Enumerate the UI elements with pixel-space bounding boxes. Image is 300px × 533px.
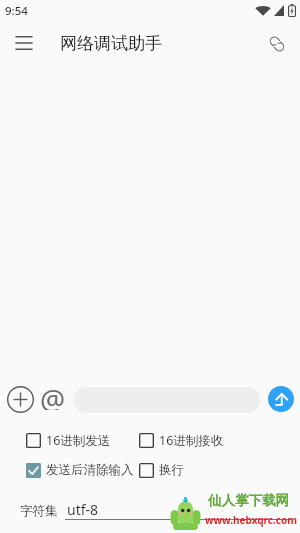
button[interactable]: At sign <box>38 380 68 410</box>
staticText: 9:54 <box>5 3 28 19</box>
button[interactable]: Disconnect <box>262 29 292 59</box>
staticText: www.hebxqrc.com <box>205 513 297 527</box>
staticText: 发送后清除输入 <box>46 462 134 478</box>
button[interactable]: Send <box>268 386 294 412</box>
staticText: 仙人掌下载网 <box>208 492 289 509</box>
staticText: 换行 <box>159 462 184 478</box>
button[interactable]: Add <box>4 383 36 415</box>
staticText: utf-8 <box>67 500 99 519</box>
staticText: @ <box>40 380 66 410</box>
button[interactable]: 16进制发送 <box>26 432 111 449</box>
button[interactable]: 16进制接收 <box>139 432 224 449</box>
button[interactable]: Menu <box>9 28 39 58</box>
staticText: 16进制发送 <box>46 432 111 449</box>
staticText: 16进制接收 <box>159 432 224 449</box>
staticText: 网络调试助手 <box>60 33 162 54</box>
button[interactable]: 发送后清除输入 <box>26 462 134 478</box>
button[interactable]: 换行 <box>139 462 184 478</box>
staticText: 字符集 <box>20 503 58 519</box>
